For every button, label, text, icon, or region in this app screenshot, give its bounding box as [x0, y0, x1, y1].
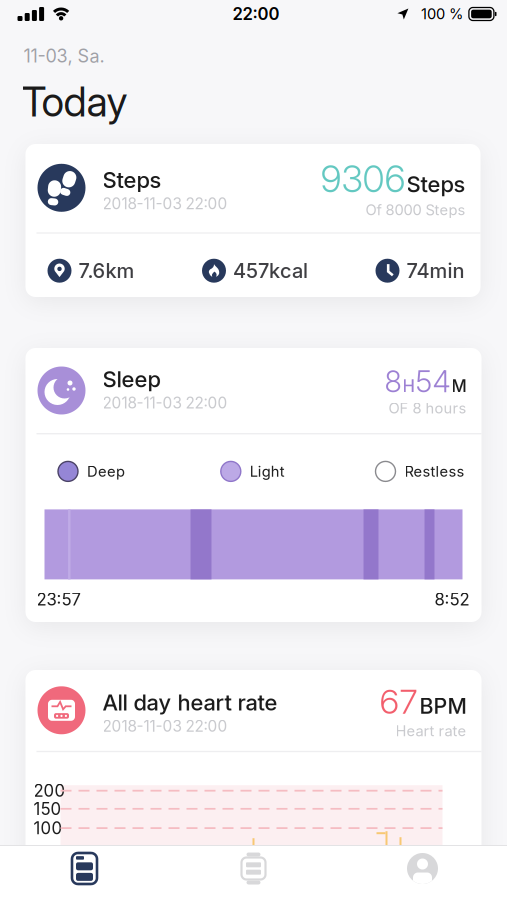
staticText: 100 %	[421, 5, 463, 23]
staticText: 74min	[406, 259, 464, 283]
staticText: Heart rate	[395, 722, 466, 740]
staticText: BPM	[419, 693, 466, 719]
button[interactable]: Band	[0, 853, 169, 884]
staticText: 2018-11-03 22:00	[102, 393, 227, 412]
staticText: 8	[384, 364, 401, 399]
button[interactable]: Steps	[25, 144, 480, 297]
staticText: Steps	[102, 167, 161, 193]
staticText: Deep	[87, 462, 125, 480]
staticText: 100	[33, 818, 62, 838]
staticText: 150	[33, 799, 61, 819]
button[interactable]: All day heart rate	[25, 670, 481, 900]
staticText: 200	[33, 781, 65, 801]
button[interactable]: Profile	[338, 853, 507, 884]
staticText: Of 8000 Steps	[365, 201, 465, 219]
staticText: 457kcal	[233, 259, 308, 283]
staticText: Restless	[404, 462, 464, 480]
staticText: 7.6km	[78, 259, 134, 283]
staticText: M	[451, 376, 466, 396]
staticText: Light	[250, 462, 285, 480]
staticText: 2018-11-03 22:00	[102, 194, 227, 213]
staticText: 8:52	[434, 589, 469, 610]
staticText: 23:57	[36, 589, 80, 610]
staticText: OF 8 hours	[388, 399, 466, 417]
staticText: Sleep	[102, 366, 160, 392]
staticText: 67	[379, 681, 417, 722]
staticText: All day heart rate	[102, 689, 277, 716]
staticText: 22:00	[232, 4, 279, 24]
staticText: Today	[21, 77, 127, 126]
button[interactable]: Sleep	[25, 348, 481, 622]
staticText: 2018-11-03 22:00	[102, 717, 227, 735]
staticText: 54	[415, 364, 450, 399]
staticText: Steps	[406, 171, 465, 198]
staticText: 9306	[320, 157, 405, 201]
staticText: H	[402, 376, 414, 396]
staticText: 11-03, Sa.	[23, 45, 104, 67]
button[interactable]: Watch	[169, 852, 338, 884]
